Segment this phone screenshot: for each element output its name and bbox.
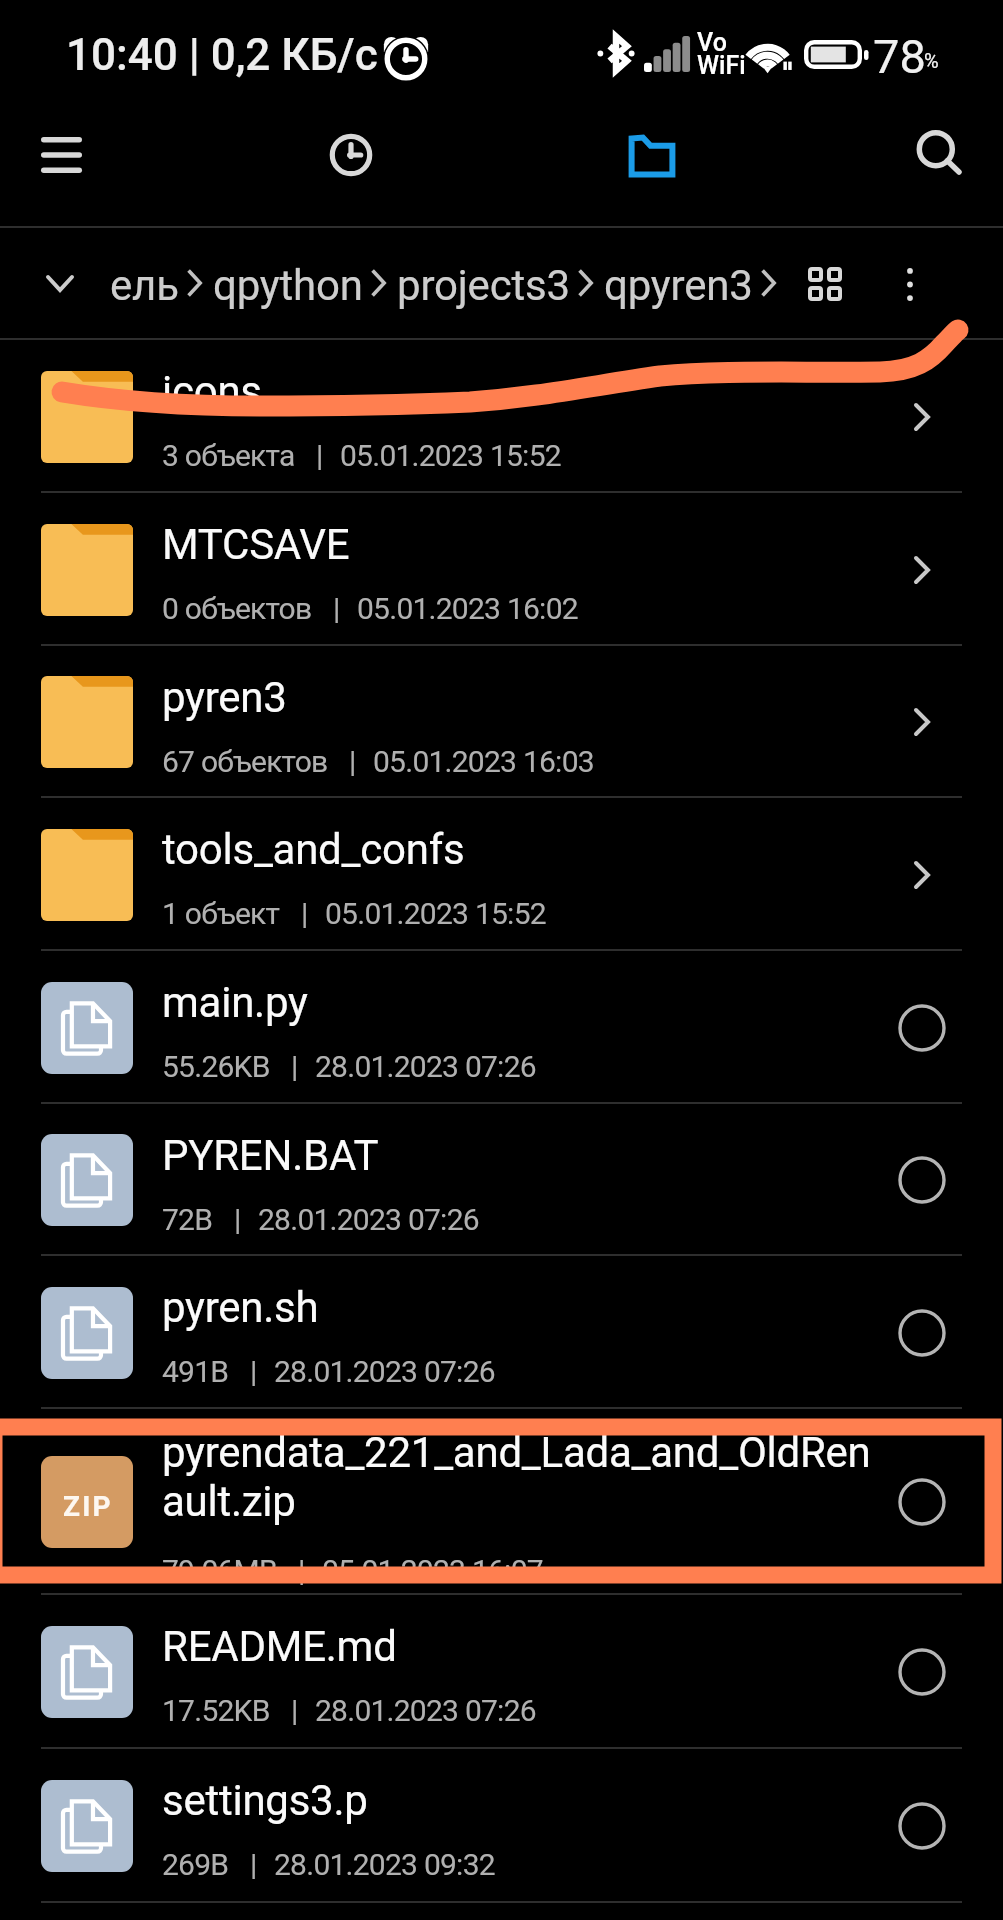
staticText: 78: [873, 29, 926, 84]
staticText: |: [234, 1202, 241, 1237]
button[interactable]: tools_and_confs: [0, 798, 1003, 951]
staticText: |: [291, 1693, 298, 1728]
staticText: PYREN.BAT: [162, 1131, 902, 1180]
button[interactable]: qpython: [213, 261, 363, 310]
staticText: 269B: [162, 1847, 229, 1882]
staticText: pyrendata_221_and_Lada_and_OldRen: [162, 1428, 871, 1477]
button[interactable]: settings3.p: [0, 1749, 1003, 1903]
staticText: 67 объектов: [162, 744, 328, 779]
staticText: 72B: [162, 1202, 213, 1237]
staticText: tools_and_confs: [162, 825, 902, 874]
staticText: ault.zip: [162, 1477, 296, 1526]
staticText: WiFi: [697, 51, 746, 80]
staticText: 05.01.2023 15:52: [325, 896, 546, 931]
staticText: icons: [162, 367, 902, 416]
staticText: 55.26KB: [162, 1049, 270, 1084]
staticText: 05.01.2023 16:02: [357, 591, 578, 626]
staticText: 3 объекта: [162, 438, 295, 473]
staticText: main.py: [162, 978, 902, 1027]
staticText: |: [291, 1049, 298, 1084]
staticText: 05.01.2023 16:03: [373, 744, 594, 779]
staticText: 1 объект: [162, 896, 280, 931]
staticText: %: [924, 49, 939, 72]
button[interactable]: ZIP: [0, 1409, 1003, 1595]
staticText: 05.01.2023 16:07: [322, 1553, 543, 1588]
staticText: README.md: [162, 1622, 902, 1671]
staticText: 491B: [162, 1354, 229, 1389]
button[interactable]: More options: [874, 248, 946, 320]
button[interactable]: MTCSAVE: [0, 493, 1003, 646]
staticText: |: [333, 591, 340, 626]
staticText: |: [250, 1847, 257, 1882]
button[interactable]: pyren.sh: [0, 1256, 1003, 1409]
button[interactable]: README.md: [0, 1595, 1003, 1749]
button[interactable]: pyren3: [0, 646, 1003, 798]
button[interactable]: Recent files: [307, 111, 395, 199]
staticText: 05.01.2023 15:52: [340, 438, 561, 473]
button[interactable]: main.py: [0, 951, 1003, 1104]
button[interactable]: Search: [896, 109, 984, 197]
staticText: MTCSAVE: [162, 520, 902, 569]
staticText: pyren3: [162, 673, 902, 722]
staticText: ZIP: [63, 1490, 113, 1523]
staticText: 0 объектов: [162, 591, 312, 626]
button[interactable]: PYREN.BAT: [0, 1104, 1003, 1256]
staticText: |: [250, 1354, 257, 1389]
staticText: 17.52KB: [162, 1693, 270, 1728]
staticText: |: [316, 438, 323, 473]
button[interactable]: icons: [0, 340, 1003, 493]
staticText: settings3.p: [162, 1776, 902, 1825]
staticText: 28.01.2023 07:26: [315, 1693, 536, 1728]
staticText: Vo: [697, 28, 727, 57]
staticText: 10:40 | 0,2 КБ/c: [66, 29, 378, 81]
button[interactable]: Menu: [17, 111, 105, 199]
staticText: |: [298, 1553, 305, 1588]
staticText: pyren.sh: [162, 1283, 902, 1332]
staticText: 79.06MB: [162, 1553, 277, 1588]
button[interactable]: qpyren3: [604, 261, 753, 310]
staticText: |: [301, 896, 308, 931]
button[interactable]: ель: [110, 261, 179, 310]
button[interactable]: Expand path: [24, 247, 96, 319]
staticText: 28.01.2023 07:26: [258, 1202, 479, 1237]
staticText: 28.01.2023 09:32: [274, 1847, 495, 1882]
button[interactable]: Grid view: [789, 248, 861, 320]
staticText: 28.01.2023 07:26: [315, 1049, 536, 1084]
staticText: 28.01.2023 07:26: [274, 1354, 495, 1389]
button[interactable]: Folders: [608, 111, 696, 199]
staticText: |: [349, 744, 356, 779]
button[interactable]: projects3: [397, 261, 570, 310]
